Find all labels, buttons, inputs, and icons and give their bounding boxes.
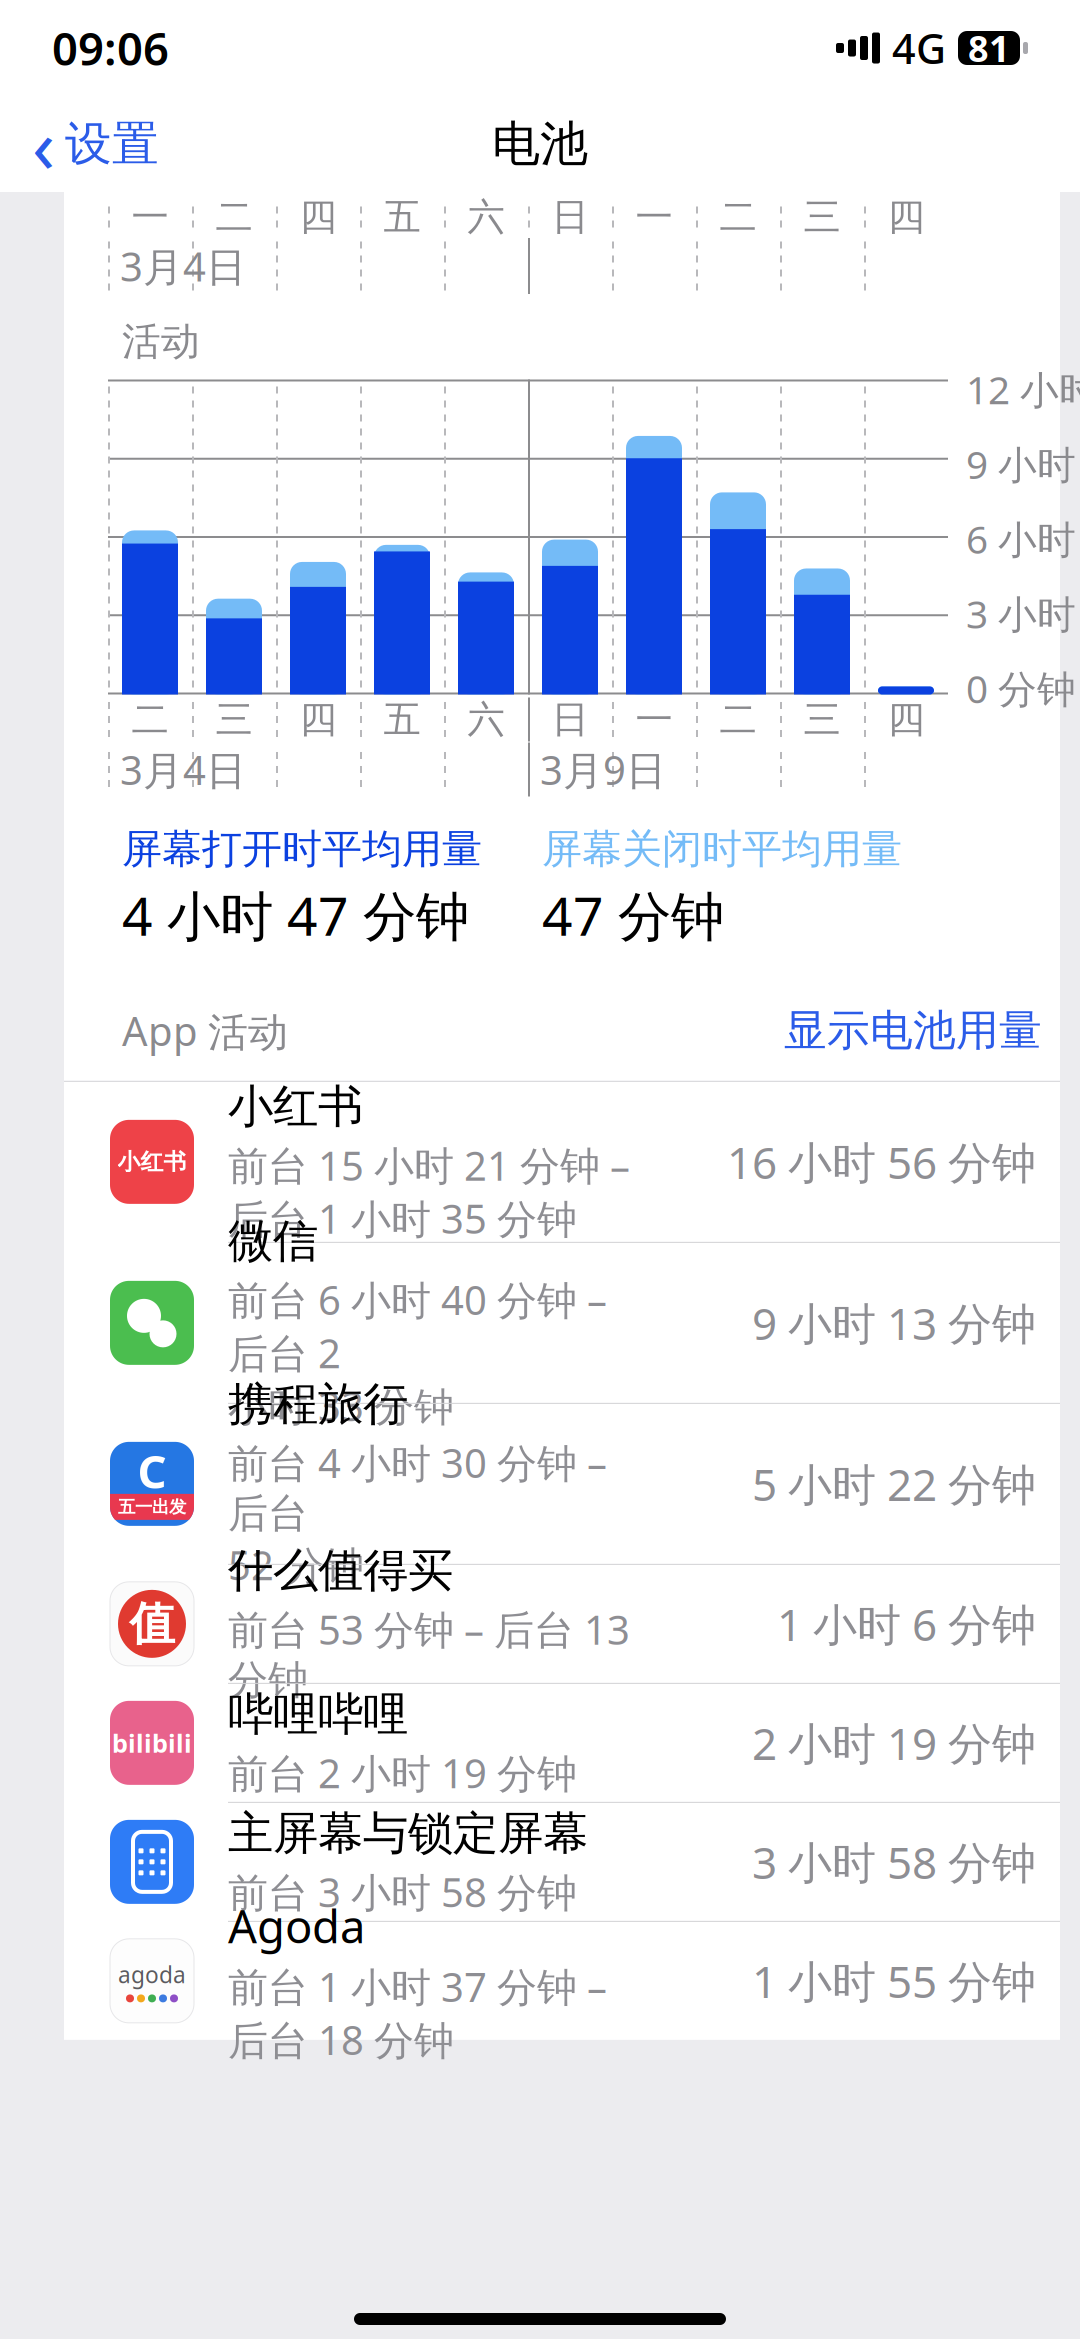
staticText: 三 xyxy=(215,697,252,742)
staticText: 主屏幕与锁定屏幕 xyxy=(228,1805,588,1861)
staticText: 四 xyxy=(887,194,924,240)
staticText: 显示电池用量 xyxy=(784,1004,1042,1057)
staticText: 什么值得买 xyxy=(228,1543,453,1599)
button[interactable]: 主屏幕与锁定屏幕 xyxy=(64,1803,1060,1922)
staticText: 屏幕打开时平均用量 xyxy=(122,824,482,874)
staticText: 设置 xyxy=(65,115,159,173)
staticText: agoda xyxy=(118,1959,186,1989)
staticText: 前台 15 小时 21 分钟 – 后台 1 小时 35 分钟 xyxy=(228,1139,630,1245)
staticText: 47 分钟 xyxy=(542,880,724,950)
button[interactable]: bilibili xyxy=(64,1684,1060,1803)
staticText: Agoda xyxy=(228,1896,365,1956)
staticText: 2 小时 19 分钟 xyxy=(752,1714,1036,1772)
staticText: 5 小时 22 分钟 xyxy=(752,1455,1036,1513)
staticText: 哔哩哔哩 xyxy=(228,1686,408,1742)
staticText: 3月9日 xyxy=(540,743,666,796)
staticText: 小红书 xyxy=(228,1079,363,1135)
staticText: 0 分钟 xyxy=(966,662,1076,714)
staticText: 活动 xyxy=(122,318,200,365)
staticText: 五 xyxy=(383,194,420,240)
staticText: 4G xyxy=(892,21,946,75)
staticText: 1 小时 55 分钟 xyxy=(752,1952,1036,2010)
staticText: 微信 xyxy=(228,1213,318,1269)
staticText: 3 小时 58 分钟 xyxy=(752,1833,1036,1891)
staticText: 二 xyxy=(131,697,168,742)
staticText: 9 小时 xyxy=(966,438,1076,489)
staticText: 三 xyxy=(803,194,840,240)
button[interactable]: C xyxy=(64,1404,1060,1565)
staticText: 12 小时 xyxy=(966,363,1080,415)
staticText: 9 小时 13 分钟 xyxy=(752,1294,1036,1352)
staticText: 日 xyxy=(551,697,588,742)
staticText: 值 xyxy=(129,1596,174,1652)
staticText: ‹ xyxy=(32,94,55,194)
staticText: 前台 2 小时 19 分钟 xyxy=(228,1746,577,1799)
staticText: 五 xyxy=(383,697,420,742)
staticText: 前台 53 分钟 – 后台 13 分钟 xyxy=(228,1603,630,1705)
button[interactable]: 显示电池用量 xyxy=(784,1000,1042,1061)
staticText: 日 xyxy=(551,194,588,240)
staticText: 四 xyxy=(299,194,336,240)
staticText: 3月4日 xyxy=(120,743,246,796)
staticText: 前台 1 小时 37 分钟 – 后台 18 分钟 xyxy=(228,1960,607,2066)
staticText: 09:06 xyxy=(52,18,169,78)
staticText: 携程旅行 xyxy=(228,1376,408,1432)
staticText: 6 小时 xyxy=(966,513,1076,564)
staticText: 五一出发 xyxy=(118,1496,186,1517)
staticText: C xyxy=(137,1441,166,1501)
staticText: 一 xyxy=(131,194,168,240)
staticText: 四 xyxy=(887,697,924,742)
staticText: bilibili xyxy=(112,1726,192,1760)
staticText: 1 小时 6 分钟 xyxy=(777,1595,1036,1653)
staticText: 16 小时 56 分钟 xyxy=(727,1133,1036,1191)
staticText: 前台 4 小时 30 分钟 – 后台 52 分钟 xyxy=(228,1436,607,1591)
staticText: 二 xyxy=(215,194,252,240)
button[interactable]: 微信 xyxy=(64,1243,1060,1404)
staticText: 一 xyxy=(635,194,672,240)
staticText: 六 xyxy=(467,697,504,742)
staticText: 3 小时 xyxy=(966,588,1076,639)
staticText: 前台 6 小时 40 分钟 – 后台 2 小时 33 分钟 xyxy=(228,1273,607,1432)
staticText: 二 xyxy=(719,194,756,240)
staticText: 4 小时 47 分钟 xyxy=(122,880,469,950)
staticText: 六 xyxy=(467,194,504,240)
button[interactable]: 小红书 xyxy=(64,1082,1060,1243)
staticText: 小红书 xyxy=(117,1148,186,1176)
button[interactable]: ‹ xyxy=(26,88,165,200)
staticText: 二 xyxy=(719,697,756,742)
button[interactable]: 值 xyxy=(64,1565,1060,1684)
button[interactable]: agoda xyxy=(64,1922,1060,2040)
staticText: 一 xyxy=(635,697,672,742)
staticText: 81 xyxy=(968,24,1010,72)
staticText: App 活动 xyxy=(122,1004,288,1057)
staticText: 3月4日 xyxy=(120,239,246,292)
staticText: 电池 xyxy=(492,114,588,173)
staticText: 三 xyxy=(803,697,840,742)
staticText: 屏幕关闭时平均用量 xyxy=(542,824,902,874)
staticText: 前台 3 小时 58 分钟 xyxy=(228,1865,577,1918)
staticText: 四 xyxy=(299,697,336,742)
